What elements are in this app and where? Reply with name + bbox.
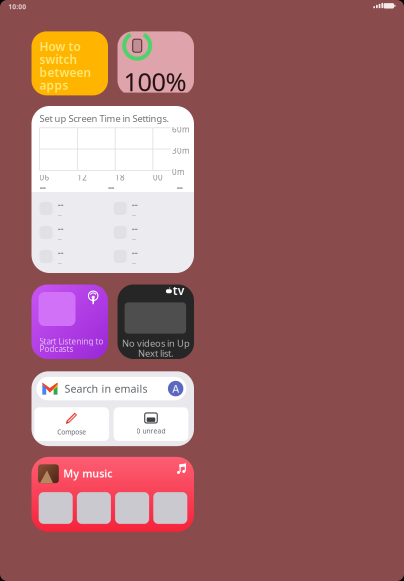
button[interactable]: 100%	[117, 31, 194, 95]
button[interactable]: 0 unread	[114, 407, 188, 441]
staticText: --	[132, 210, 136, 219]
staticText: --	[57, 258, 61, 267]
button[interactable]: My music	[31, 457, 194, 532]
staticText: Search in emails	[64, 381, 147, 396]
button[interactable]: Set up Screen Time in Settings.	[31, 106, 194, 273]
staticText: --	[57, 198, 63, 210]
staticText: tv	[173, 282, 185, 298]
staticText: How to switch between apps	[39, 38, 91, 93]
staticText: --	[132, 258, 136, 267]
staticText: My music	[63, 466, 112, 480]
staticText: --	[57, 210, 61, 219]
staticText: --	[132, 222, 138, 234]
button[interactable]: tv	[117, 284, 194, 359]
staticText: 0m	[172, 167, 184, 177]
staticText: --	[132, 198, 138, 210]
button[interactable]: Compose	[34, 407, 109, 441]
staticText: Compose	[57, 427, 86, 436]
staticText: 100%	[123, 65, 186, 98]
staticText: --	[57, 234, 61, 243]
staticText: 10:00	[8, 2, 26, 11]
staticText: --	[108, 179, 114, 193]
staticText: 12	[77, 172, 87, 183]
staticText: No videos in Up Next list.	[122, 337, 190, 359]
staticText: Set up Screen Time in Settings.	[39, 112, 169, 125]
staticText: --	[57, 246, 63, 258]
staticText: Start Listening to Podcasts	[39, 336, 103, 354]
staticText: 30m	[172, 145, 189, 156]
button[interactable]: How to switch between apps	[31, 31, 108, 95]
staticText: --	[132, 234, 136, 243]
staticText: A	[172, 381, 179, 396]
staticText: --	[57, 222, 63, 234]
staticText: --	[132, 246, 138, 258]
button[interactable]: Start Listening to Podcasts	[31, 284, 108, 359]
staticText: 06	[39, 172, 49, 183]
staticText: 18	[115, 172, 125, 183]
staticText: 60m	[172, 124, 189, 135]
button[interactable]: Search in emails	[31, 371, 181, 395]
staticText: --	[39, 179, 45, 193]
staticText: --	[176, 179, 182, 193]
staticText: 00	[153, 172, 163, 183]
staticText: 0 unread	[136, 426, 165, 435]
